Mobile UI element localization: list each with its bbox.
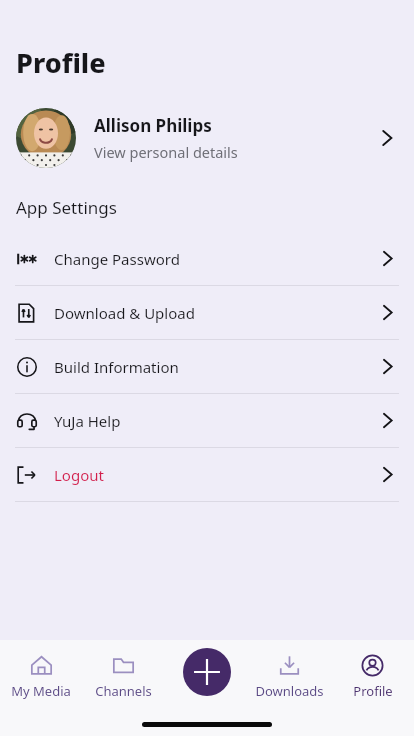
staticText: Profile	[353, 682, 393, 700]
staticText: App Settings	[16, 196, 117, 219]
staticText: Build Information	[54, 357, 377, 377]
button[interactable]: Allison Philips	[0, 102, 414, 174]
staticText: View personal details	[94, 142, 238, 162]
button[interactable]: Profile	[331, 640, 414, 716]
button[interactable]: Logout	[0, 448, 414, 501]
staticText: YuJa Help	[54, 411, 377, 431]
staticText: Channels	[95, 682, 152, 700]
button[interactable]: Build Information	[0, 340, 414, 393]
staticText: Download & Upload	[54, 303, 377, 323]
staticText: Allison Philips	[94, 114, 212, 137]
button[interactable]: Channels	[82, 640, 165, 716]
button[interactable]: Download & Upload	[0, 286, 414, 339]
staticText: Downloads	[255, 682, 324, 700]
button[interactable]: Change Password	[0, 232, 414, 285]
button[interactable]: My Media	[0, 640, 82, 716]
staticText: Profile	[16, 44, 106, 81]
staticText: My Media	[11, 682, 71, 700]
button[interactable]: YuJa Help	[0, 394, 414, 447]
staticText: Change Password	[54, 249, 377, 269]
button[interactable]: Create	[183, 648, 231, 696]
staticText: Logout	[54, 465, 377, 485]
button[interactable]: Downloads	[248, 640, 331, 716]
